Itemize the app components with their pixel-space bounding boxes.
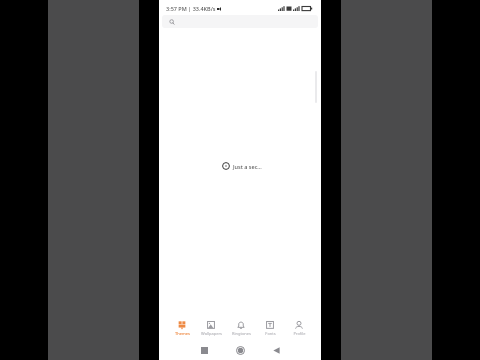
staticText: Ringtones (232, 331, 251, 336)
staticText: Just a sec... (233, 163, 262, 170)
button[interactable]: Fonts (256, 316, 284, 338)
button[interactable]: Recents (198, 344, 210, 356)
button[interactable]: Home (234, 344, 246, 356)
staticText: Themes (175, 331, 190, 336)
button[interactable]: Themes (168, 316, 196, 338)
staticText: Fonts (265, 331, 276, 336)
button[interactable]: Back (270, 344, 282, 356)
staticText: Wallpapers (201, 331, 222, 336)
staticText: Profile (293, 331, 306, 336)
staticText: 3:57 PM | 33.4KB/s (166, 5, 216, 12)
button[interactable]: Profile (285, 316, 313, 338)
button[interactable]: Wallpapers (197, 316, 225, 338)
button[interactable]: Search (162, 15, 318, 28)
button[interactable]: Ringtones (227, 316, 255, 338)
